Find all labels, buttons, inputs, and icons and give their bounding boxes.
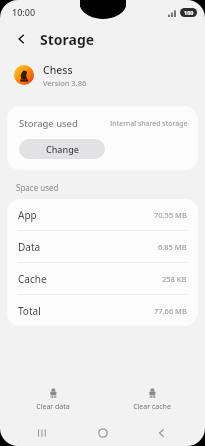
staticText: 6.85 MB (158, 242, 187, 252)
button[interactable]: Data (7, 231, 198, 262)
staticText: Data (18, 240, 41, 254)
staticText: 100 (184, 9, 194, 16)
staticText: Change (46, 143, 79, 155)
staticText: Internal shared storage (110, 119, 188, 129)
staticText: 258 KB (162, 274, 187, 284)
button[interactable]: Clear data (8, 383, 98, 415)
staticText: Space used (16, 182, 59, 193)
button[interactable]: Cache (7, 263, 198, 294)
staticText: 70.55 MB (154, 210, 187, 220)
staticText: 10:00 (12, 6, 36, 18)
button[interactable]: Back (12, 29, 32, 49)
staticText: Total (18, 304, 41, 318)
button[interactable]: App (7, 199, 198, 230)
staticText: Storage used (19, 117, 78, 130)
button[interactable]: Recent apps (26, 420, 60, 446)
button[interactable]: Clear cache (107, 383, 197, 415)
staticText: App (18, 208, 37, 222)
staticText: Storage (40, 30, 95, 49)
staticText: Cache (18, 272, 47, 286)
staticText: Chess (43, 63, 73, 77)
button[interactable]: Total (7, 295, 198, 326)
staticText: Version 3.86 (43, 78, 87, 88)
button[interactable]: Home (86, 420, 120, 446)
button[interactable]: Change (19, 139, 105, 159)
staticText: Clear cache (133, 402, 171, 412)
button[interactable]: Chess (0, 54, 205, 96)
staticText: 77.66 MB (154, 306, 187, 316)
staticText: Clear data (36, 402, 70, 412)
button[interactable]: Back (145, 420, 179, 446)
